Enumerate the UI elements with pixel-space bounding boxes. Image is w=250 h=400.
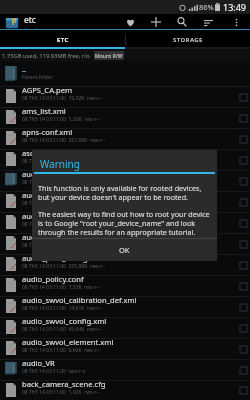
button[interactable]: Sort — [195, 14, 222, 30]
button[interactable]: Select audio_path_config.xml — [236, 255, 250, 275]
button[interactable]: audio_swvol_element.xml — [0, 339, 250, 359]
staticText: 08 Th5 14 03:11:00 3,10K rwx-r-- — [22, 221, 100, 228]
staticText: ETC — [57, 36, 69, 44]
button[interactable]: ams_list.xml — [0, 108, 250, 128]
button[interactable]: .. — [0, 62, 250, 86]
button[interactable]: audio_device.xml — [0, 192, 250, 212]
staticText: audio_path_config.xml — [22, 253, 103, 263]
staticText: 08 Th5 14 03:11:00 45,64K rwx-r-- — [22, 326, 103, 333]
staticText: The easiest way to find out how to root … — [38, 209, 211, 237]
staticText: audio_effects.conf — [22, 211, 87, 221]
button[interactable]: audio_param.xml — [0, 234, 250, 254]
staticText: 1.75GB used, 119.93MB free, r/o — [2, 52, 90, 60]
button[interactable]: audio_policy.conf — [0, 276, 250, 296]
staticText: 08 Th5 14 03:11:00 19,32K rwx-r-- — [22, 95, 103, 102]
staticText: STORAGE — [173, 36, 203, 44]
button[interactable]: audio_swvol_config.xml — [0, 318, 250, 338]
staticText: asound.conf — [22, 148, 67, 158]
button[interactable]: apns-conf.xml — [0, 129, 250, 149]
staticText: audio_swvol_calibration_def.xml — [22, 295, 137, 305]
staticText: 08 Th5 14 03:11:00 257,68K rwx-r-- — [22, 137, 106, 144]
button[interactable]: Select audio_swvol_calibration_def.xml — [236, 297, 250, 317]
staticText: 08 Th5 14 03:11:00 7,53K rwx-r-- — [22, 284, 100, 291]
button[interactable]: Select audio_VR — [236, 360, 250, 380]
staticText: audio_param.xml — [22, 232, 84, 242]
button[interactable]: Search — [169, 14, 195, 30]
staticText: audio_VR — [22, 358, 55, 368]
button[interactable]: Select audio_effects.conf — [236, 213, 250, 233]
staticText: audio_swvol_element.xml — [22, 337, 114, 347]
button[interactable]: audio_swvol_calibration_def.xml — [0, 297, 250, 317]
button[interactable]: Favorites — [117, 14, 143, 30]
button[interactable]: Select audio_swvol_element.xml — [236, 339, 250, 359]
button[interactable]: audio_VR — [0, 360, 250, 380]
button[interactable]: Mount R/W — [94, 51, 124, 60]
staticText: back_camera_scene.cfg — [22, 379, 106, 389]
staticText: audio — [22, 169, 43, 179]
button[interactable]: New — [143, 14, 169, 30]
button[interactable]: AGPS_CA.pem — [0, 87, 250, 107]
staticText: 08 Th5 14 03:11:00 14,61K rwx-r-- — [22, 305, 103, 312]
staticText: Mount R/W — [95, 52, 123, 59]
staticText: audio_swvol_config.xml — [22, 316, 107, 326]
staticText: This function is only available for root… — [38, 183, 211, 202]
button[interactable]: Select audio_swvol_config.xml — [236, 318, 250, 338]
staticText: Parent folder — [22, 74, 53, 81]
button[interactable]: Select audio_device.xml — [236, 192, 250, 212]
staticText: 86% — [199, 2, 214, 12]
button[interactable]: Select AGPS_CA.pem — [236, 87, 250, 107]
button[interactable]: audio — [0, 171, 250, 191]
button[interactable]: More options — [222, 14, 250, 30]
staticText: .. — [22, 64, 27, 74]
staticText: 13:49 — [223, 1, 247, 13]
staticText: 08 Th5 14 03:11:00 335,88K rwx-r-- — [22, 263, 106, 270]
button[interactable]: asound.conf — [0, 150, 250, 170]
staticText: Warning — [40, 157, 80, 171]
button[interactable]: Select audio_param.xml — [236, 234, 250, 254]
button[interactable]: Select apns-conf.xml — [236, 129, 250, 149]
staticText: /system — [24, 26, 49, 30]
staticText: 08 Th5 14 03:11:00 2,41K rwx-r-- — [22, 200, 100, 207]
staticText: 08 Th5 14 03:11:00 1,80K rwx-r-- — [22, 158, 100, 165]
staticText: 08 Th5 14 03:11:00 rwx-r-x — [22, 179, 86, 186]
button[interactable]: Select audio — [236, 171, 250, 191]
staticText: etc — [24, 14, 36, 26]
button[interactable]: Select back_camera_scene.cfg — [236, 381, 250, 400]
button[interactable]: back_camera_scene.cfg — [0, 381, 250, 400]
staticText: audio_policy.conf — [22, 274, 84, 284]
staticText: audio_device.xml — [22, 190, 84, 200]
staticText: ams_list.xml — [22, 106, 66, 116]
staticText: 08 Th5 14 03:11:00 rwx-r-x — [22, 368, 86, 375]
staticText: 08 Th5 14 03:11:00 6,69K rwx-r-- — [22, 347, 100, 354]
button[interactable]: Select ams_list.xml — [236, 108, 250, 128]
staticText: apns-conf.xml — [22, 127, 73, 137]
staticText: 08 Th5 14 03:11:00 1,20K rwx-r-- — [22, 116, 100, 123]
button[interactable]: Select audio_policy.conf — [236, 276, 250, 296]
button[interactable]: ETC — [0, 30, 125, 49]
staticText: AGPS_CA.pem — [22, 85, 73, 95]
button[interactable]: Up — [4, 15, 19, 30]
button[interactable]: STORAGE — [125, 30, 250, 49]
button[interactable]: audio_path_config.xml — [0, 255, 250, 275]
button[interactable]: audio_effects.conf — [0, 213, 250, 233]
button[interactable]: Select asound.conf — [236, 150, 250, 170]
button[interactable]: OK — [32, 239, 217, 261]
staticText: 08 Th5 14 03:11:00 5,66K rwx-r-- — [22, 242, 100, 249]
staticText: OK — [119, 245, 130, 255]
staticText: 08 Th5 14 03:11:00 1,02K rwx-r-- — [22, 389, 100, 396]
